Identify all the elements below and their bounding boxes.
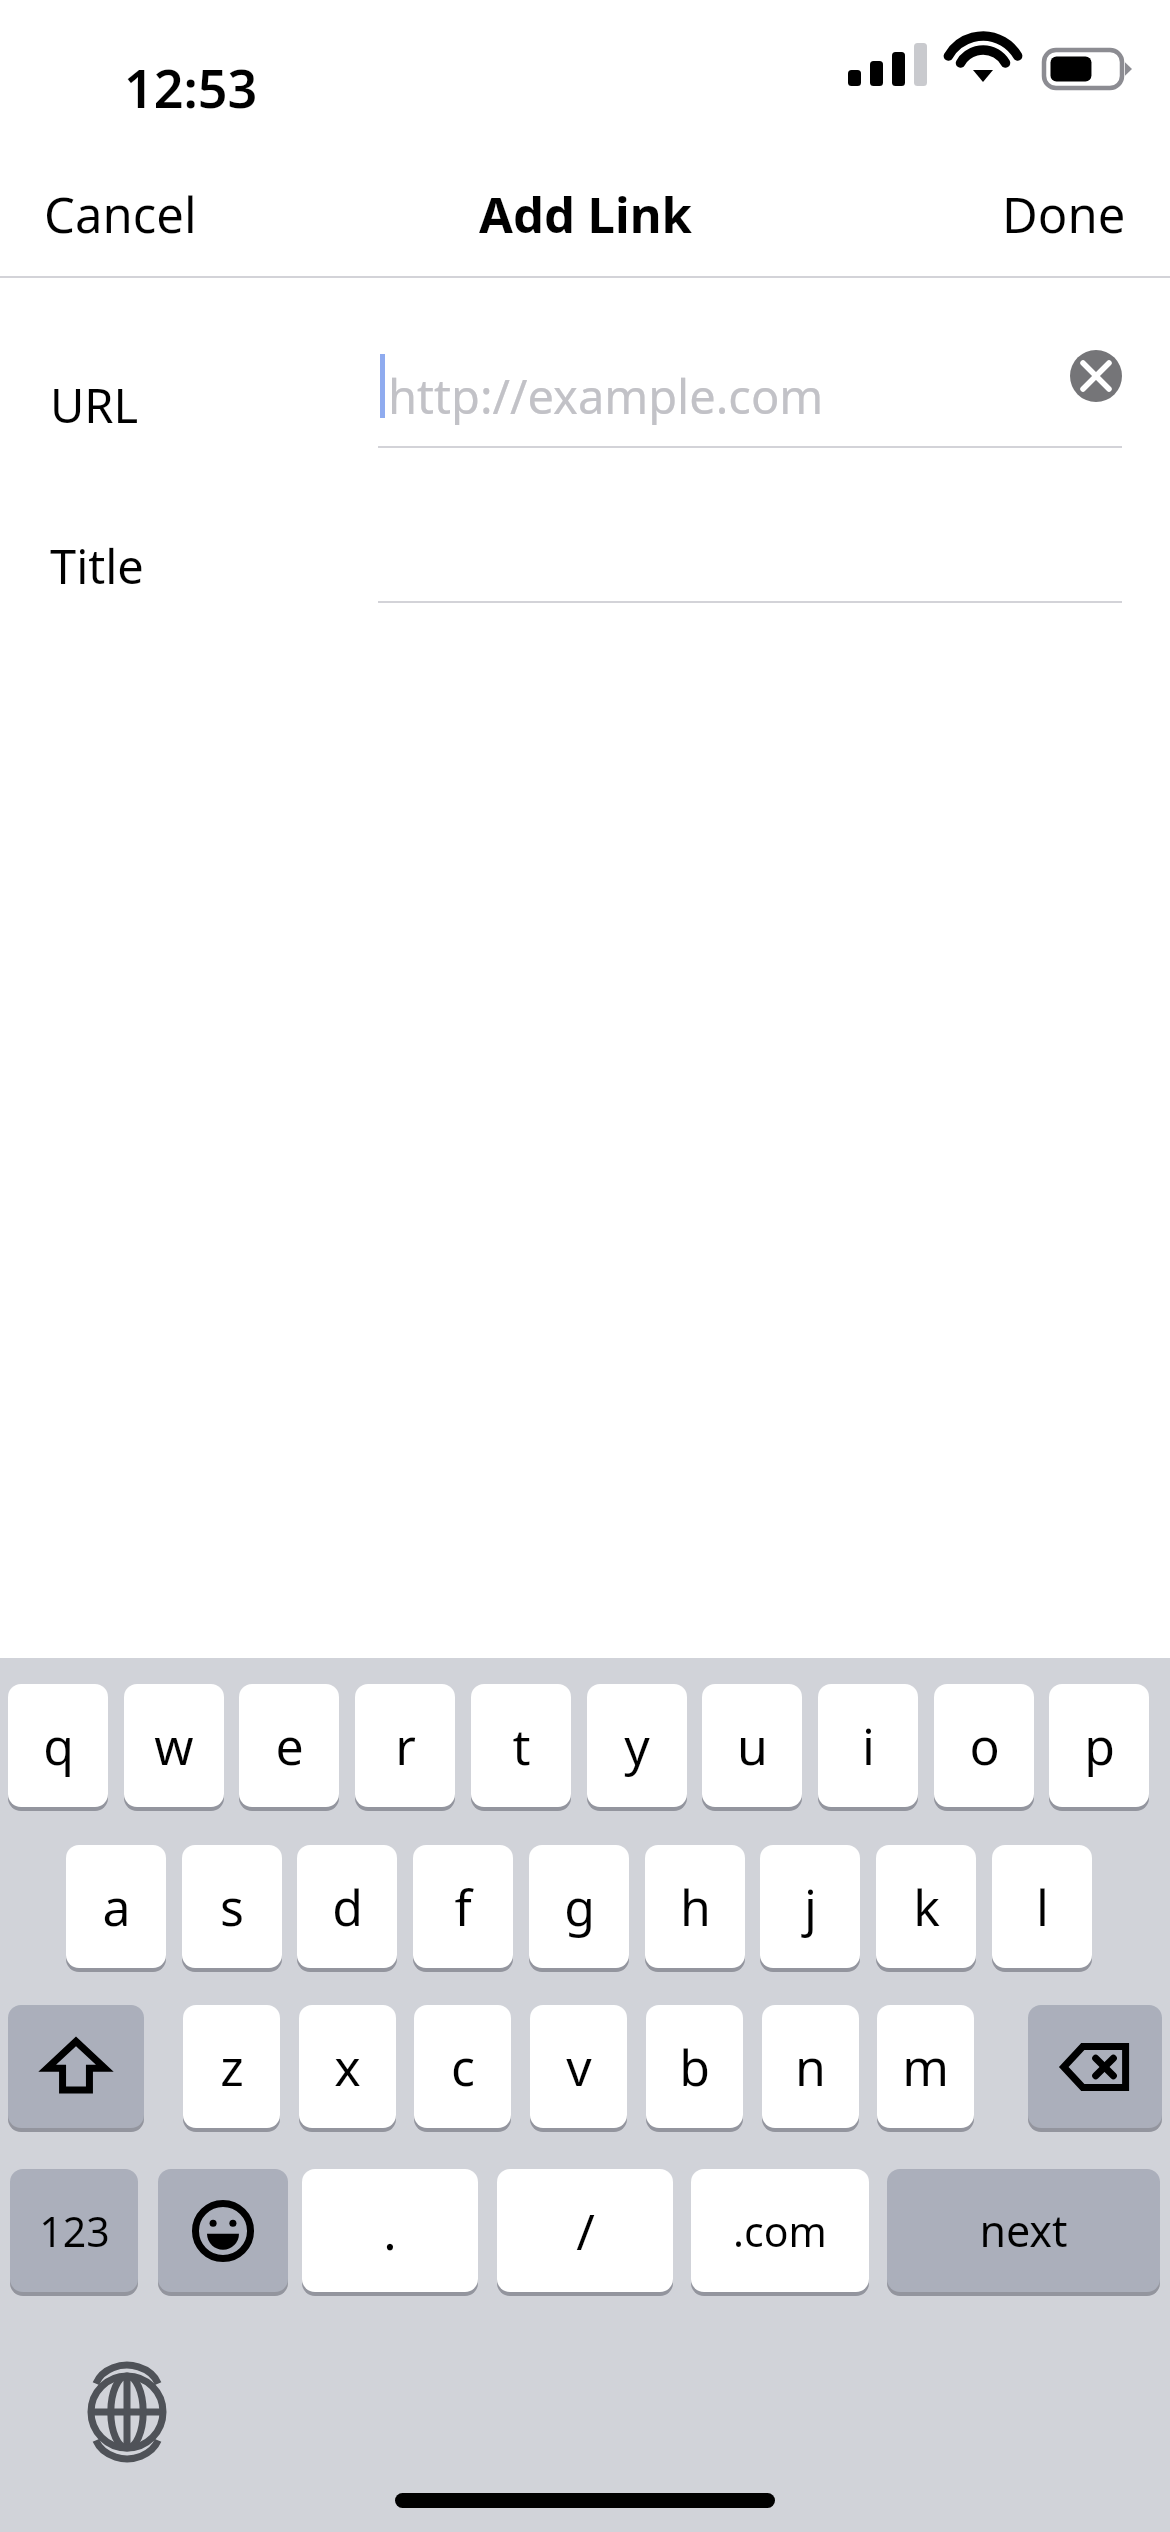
staticText: .com [733, 2203, 827, 2259]
button[interactable]: o [934, 1684, 1034, 1807]
staticText: s [220, 1873, 244, 1941]
staticText: . [383, 2197, 397, 2265]
button[interactable]: i [818, 1684, 918, 1807]
button[interactable]: a [66, 1845, 166, 1968]
button[interactable]: x [299, 2005, 396, 2128]
staticText: u [737, 1712, 768, 1780]
button[interactable]: l [992, 1845, 1092, 1968]
staticText: x [334, 2033, 361, 2101]
button[interactable]: k [876, 1845, 976, 1968]
staticText: y [624, 1712, 650, 1780]
button[interactable]: . [302, 2169, 478, 2292]
button[interactable]: y [587, 1684, 687, 1807]
button[interactable]: r [355, 1684, 455, 1807]
staticText: w [154, 1712, 194, 1780]
button[interactable]: .com [691, 2169, 869, 2292]
button[interactable]: z [183, 2005, 280, 2128]
button[interactable]: u [702, 1684, 802, 1807]
button[interactable]: Emoji keyboard [158, 2169, 288, 2292]
button[interactable]: Clear text [1058, 338, 1134, 414]
staticText: next [979, 2201, 1068, 2260]
staticText: z [220, 2033, 244, 2101]
staticText: k [913, 1873, 940, 1941]
staticText: r [395, 1712, 416, 1780]
button[interactable]: s [182, 1845, 282, 1968]
staticText: URL [50, 373, 139, 437]
button[interactable]: 123 [10, 2169, 138, 2292]
button[interactable]: g [529, 1845, 629, 1968]
button[interactable]: w [124, 1684, 224, 1807]
button[interactable]: f [413, 1845, 513, 1968]
button[interactable]: http://example.com [378, 340, 1038, 444]
button[interactable]: Shift [8, 2005, 144, 2128]
staticText: Add Link [479, 181, 692, 248]
staticText: / [576, 2197, 595, 2265]
staticText: Cancel [44, 181, 197, 248]
staticText: t [512, 1712, 531, 1780]
button[interactable]: Done [958, 157, 1170, 272]
staticText: v [566, 2033, 592, 2101]
button[interactable]: n [762, 2005, 859, 2128]
staticText: j [804, 1873, 817, 1941]
button[interactable]: b [646, 2005, 743, 2128]
staticText: 123 [39, 2203, 110, 2259]
button[interactable]: Change keyboard [86, 2371, 168, 2453]
staticText: f [454, 1873, 472, 1941]
button[interactable]: m [877, 2005, 974, 2128]
button[interactable]: / [497, 2169, 673, 2292]
button[interactable]: next [887, 2169, 1160, 2292]
staticText: Title [50, 534, 144, 598]
staticText: g [564, 1873, 595, 1941]
staticText: a [102, 1873, 131, 1941]
button[interactable]: j [760, 1845, 860, 1968]
staticText: m [902, 2033, 949, 2101]
staticText: o [969, 1712, 1000, 1780]
button[interactable]: c [414, 2005, 511, 2128]
staticText: n [795, 2033, 826, 2101]
staticText: p [1084, 1712, 1115, 1780]
staticText: 12:53 [124, 52, 258, 123]
staticText: http://example.com [388, 364, 824, 428]
button[interactable]: p [1049, 1684, 1149, 1807]
button[interactable]: e [239, 1684, 339, 1807]
staticText: d [332, 1873, 363, 1941]
staticText: e [275, 1712, 304, 1780]
button[interactable]: d [297, 1845, 397, 1968]
staticText: i [862, 1712, 875, 1780]
staticText: h [680, 1873, 711, 1941]
button[interactable] [378, 502, 1122, 606]
staticText: c [451, 2033, 475, 2101]
staticText: b [679, 2033, 710, 2101]
staticText: l [1036, 1873, 1049, 1941]
button[interactable]: q [8, 1684, 108, 1807]
button[interactable]: t [471, 1684, 571, 1807]
staticText: Done [1002, 181, 1126, 248]
button[interactable]: Backspace [1028, 2005, 1162, 2128]
button[interactable]: h [645, 1845, 745, 1968]
button[interactable]: v [530, 2005, 627, 2128]
button[interactable]: Cancel [0, 157, 241, 272]
staticText: q [43, 1712, 74, 1780]
